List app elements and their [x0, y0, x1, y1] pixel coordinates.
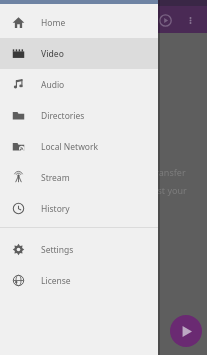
button[interactable]: Cast	[155, 10, 175, 30]
staticText: History	[41, 203, 70, 215]
button[interactable]: History	[0, 193, 158, 224]
staticText: Local Network	[41, 141, 99, 153]
staticText: Home	[41, 17, 66, 29]
button[interactable]: More options	[181, 11, 199, 29]
staticText: License	[41, 275, 71, 287]
button[interactable]: Settings	[0, 234, 158, 265]
button[interactable]: Audio	[0, 69, 158, 100]
button[interactable]: Directories	[0, 100, 158, 131]
button[interactable]: Play	[170, 315, 202, 347]
button[interactable]: Local Network	[0, 131, 158, 162]
staticText: Settings	[41, 244, 74, 256]
button[interactable]: Home	[0, 7, 158, 38]
button[interactable]: License	[0, 265, 158, 296]
button[interactable]: Stream	[0, 162, 158, 193]
staticText: Stream	[41, 172, 70, 184]
staticText: Audio	[41, 79, 65, 91]
staticText: transfer	[152, 166, 186, 178]
button[interactable]: Video	[0, 38, 158, 69]
staticText: Directories	[41, 110, 85, 122]
staticText: Video	[41, 48, 64, 60]
staticText: ust your	[152, 184, 187, 196]
